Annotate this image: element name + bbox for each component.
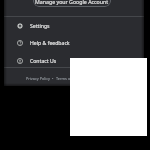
button[interactable]: Settings bbox=[4, 17, 144, 34]
button[interactable]: Manage your Google Account bbox=[33, 0, 111, 7]
button[interactable]: Terms of Service bbox=[56, 76, 86, 81]
other: Contact Us bbox=[17, 58, 23, 64]
staticText: • bbox=[50, 76, 56, 81]
staticText: Manage your Google Account bbox=[35, 0, 109, 5]
button[interactable]: Help and feedback bbox=[4, 34, 144, 51]
other: Help and feedback bbox=[17, 40, 23, 46]
other: Settings bbox=[17, 23, 23, 29]
button[interactable]: Contact Us bbox=[4, 52, 144, 69]
staticText: Settings bbox=[30, 22, 50, 29]
staticText: Contact Us bbox=[30, 57, 57, 64]
button[interactable]: Privacy Policy bbox=[26, 76, 50, 81]
staticText: Help & feedback bbox=[30, 39, 70, 46]
